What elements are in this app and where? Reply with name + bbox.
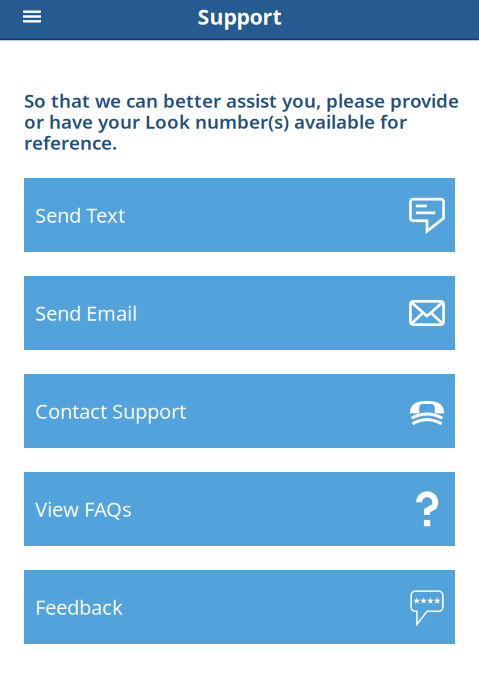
staticText: or have your Look number(s) available fo… — [24, 109, 407, 134]
staticText: Feedback — [35, 594, 123, 620]
staticText: reference. — [24, 130, 117, 155]
staticText: So that we can better assist you, please… — [24, 88, 459, 113]
staticText: Send Text — [35, 202, 125, 228]
staticText: Contact Support — [35, 398, 186, 424]
button[interactable]: View FAQs — [24, 472, 455, 546]
button[interactable]: Send Text — [24, 178, 455, 252]
staticText: Support — [197, 2, 281, 31]
staticText: View FAQs — [35, 496, 132, 522]
button[interactable]: Feedback — [24, 570, 455, 644]
button[interactable]: Menu — [0, 0, 55, 33]
staticText: Send Email — [35, 300, 137, 326]
button[interactable]: Send Email — [24, 276, 455, 350]
button[interactable]: Contact Support — [24, 374, 455, 448]
